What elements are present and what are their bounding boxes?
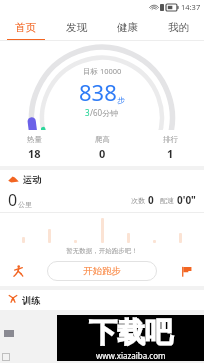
staticText: 开始跑步 [83,265,121,277]
staticText: 我的 [168,21,189,34]
staticText: 暂无数据，开始跑步吧！ [0,247,204,255]
button[interactable]: 热量 [0,130,68,166]
staticText: 健康 [117,21,138,34]
button[interactable]: 爬高 [68,130,136,166]
staticText: 0'0" [177,193,196,207]
staticText: 1 [167,146,174,161]
staticText: 配速 [160,196,174,205]
staticText: 3 [85,107,90,118]
button[interactable]: 发现 [51,13,102,41]
button[interactable]: Goal flag [175,260,197,282]
button[interactable]: 首页 [0,13,51,41]
staticText: 运动 [23,174,41,185]
staticText: 发现 [66,21,87,34]
staticText: 热量 [27,135,42,144]
button[interactable]: 训练 [0,290,204,310]
button[interactable]: 开始跑步 [47,261,157,281]
staticText: /60分钟 [90,107,119,118]
staticText: www.xiazaiba.com [96,350,166,361]
staticText: 排行 [163,135,178,144]
button[interactable]: 排行 [136,130,204,166]
button[interactable]: 我的 [153,13,204,41]
button[interactable]: 运动 [0,170,204,188]
staticText: 0 [8,189,18,211]
staticText: 目标 10000 [83,66,122,76]
staticText: 爬高 [95,135,110,144]
staticText: 0 [99,146,106,161]
button[interactable]: Running [7,260,29,282]
staticText: 次数 [131,196,145,205]
staticText: 步 [117,95,125,105]
staticText: 838 [79,77,117,107]
staticText: 下载吧 [89,315,173,350]
staticText: 训练 [22,295,40,306]
staticText: 0 [148,193,154,207]
staticText: 公里 [18,200,32,209]
staticText: 首页 [15,21,36,34]
button[interactable]: 健康 [102,13,153,41]
staticText: 18 [28,146,41,161]
staticText: 14:37 [181,2,201,12]
